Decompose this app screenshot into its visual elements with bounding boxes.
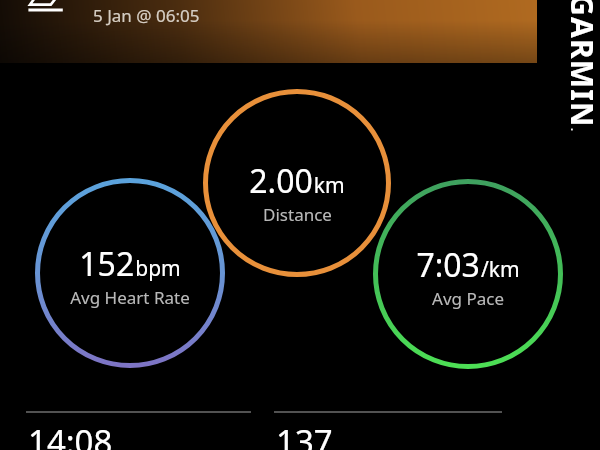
staticText: 5 Jan @ 06:05 xyxy=(93,4,200,27)
staticText: 7:03 /km xyxy=(416,243,520,287)
button[interactable]: Average pace 7:03 per kilometre xyxy=(373,179,563,369)
button[interactable]: 14:08 xyxy=(26,396,276,450)
staticText: 2.00 km xyxy=(249,159,345,203)
button[interactable]: Average heart rate 152 bpm xyxy=(35,178,225,368)
staticText: 14:08 xyxy=(28,419,113,450)
button[interactable]: Distance 2.00 kilometres xyxy=(203,89,391,277)
button[interactable]: 137 xyxy=(274,396,524,450)
staticText: 137 xyxy=(276,419,333,450)
staticText: 152 bpm xyxy=(79,242,181,286)
staticText: Avg Pace xyxy=(432,287,504,310)
button[interactable]: Activity type xyxy=(26,0,66,16)
staticText: Avg Heart Rate xyxy=(70,286,190,309)
staticText: Distance xyxy=(263,203,332,226)
staticText: GARMIN. xyxy=(569,0,600,132)
